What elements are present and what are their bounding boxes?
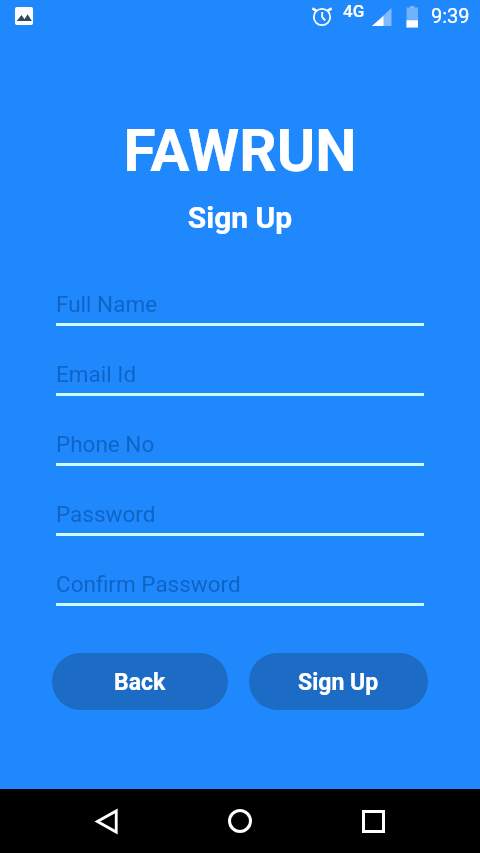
staticText: Phone No	[56, 431, 155, 457]
button[interactable]: Recents	[349, 797, 397, 845]
button[interactable]: Sign Up	[249, 653, 428, 710]
button[interactable]: Phone No	[56, 423, 424, 466]
button[interactable]: Full Name	[56, 283, 424, 326]
staticText: FAWRUN	[0, 117, 480, 186]
staticText: Sign Up	[298, 669, 379, 696]
button[interactable]: Home	[216, 797, 264, 845]
button[interactable]: Password	[56, 493, 424, 536]
staticText: Email Id	[56, 361, 137, 387]
button[interactable]: Confirm Password	[56, 563, 424, 606]
staticText: Full Name	[56, 291, 158, 317]
staticText: Back	[114, 669, 166, 696]
staticText: Password	[56, 501, 156, 527]
staticText: 9:39	[431, 4, 470, 27]
staticText: 4G	[343, 1, 365, 21]
staticText: Sign Up	[0, 200, 480, 235]
staticText: Confirm Password	[56, 571, 241, 597]
button[interactable]: Back	[52, 653, 228, 710]
button[interactable]: Email Id	[56, 353, 424, 396]
button[interactable]: Back	[83, 797, 131, 845]
